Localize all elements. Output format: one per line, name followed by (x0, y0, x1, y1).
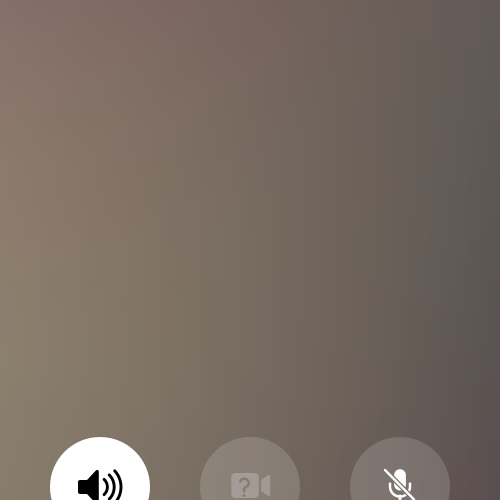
button[interactable]: Speaker (50, 437, 150, 500)
button[interactable]: Mute (350, 437, 450, 500)
button[interactable]: Camera off (200, 437, 300, 500)
